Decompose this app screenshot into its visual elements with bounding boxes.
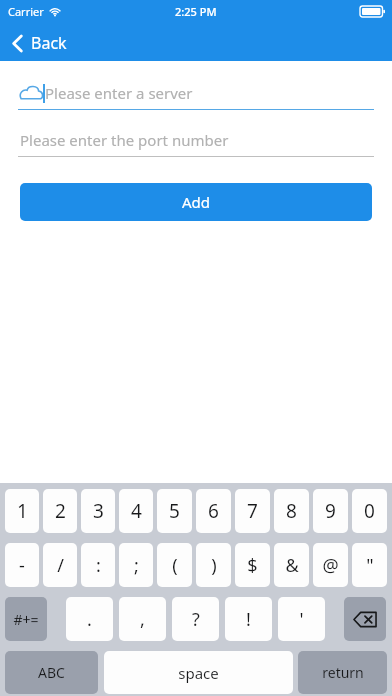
staticText: 1 bbox=[17, 498, 28, 524]
staticText: " bbox=[366, 553, 374, 578]
staticText: & bbox=[285, 553, 299, 578]
staticText: 9 bbox=[325, 498, 336, 524]
button[interactable]: space bbox=[104, 651, 293, 694]
staticText: $ bbox=[247, 553, 258, 578]
button[interactable]: - bbox=[5, 543, 39, 587]
staticText: 7 bbox=[247, 498, 258, 524]
button[interactable]: Backspace bbox=[344, 597, 386, 641]
staticText: ; bbox=[134, 553, 139, 578]
staticText: #+= bbox=[13, 610, 39, 629]
staticText: ) bbox=[211, 553, 217, 578]
button[interactable]: , bbox=[119, 597, 166, 641]
staticText: ABC bbox=[38, 663, 65, 682]
button[interactable]: Back bbox=[8, 29, 71, 57]
button[interactable]: 6 bbox=[196, 489, 231, 533]
staticText: Back bbox=[31, 32, 67, 54]
button[interactable]: ! bbox=[225, 597, 272, 641]
staticText: - bbox=[19, 553, 25, 578]
staticText: 5 bbox=[169, 498, 180, 524]
button[interactable]: & bbox=[274, 543, 309, 587]
button[interactable]: return bbox=[298, 651, 387, 694]
staticText: 3 bbox=[93, 498, 104, 524]
button[interactable]: 7 bbox=[235, 489, 270, 533]
staticText: Carrier bbox=[8, 4, 44, 19]
button[interactable]: 1 bbox=[5, 489, 39, 533]
button[interactable]: 2 bbox=[43, 489, 77, 533]
button[interactable]: ABC bbox=[5, 651, 98, 694]
staticText: space bbox=[178, 663, 219, 683]
button[interactable]: 4 bbox=[119, 489, 153, 533]
button[interactable]: 8 bbox=[274, 489, 309, 533]
staticText: ( bbox=[172, 553, 178, 578]
staticText: : bbox=[96, 553, 101, 578]
staticText: ' bbox=[299, 607, 304, 632]
staticText: 2:25 PM bbox=[175, 4, 217, 19]
button[interactable]: 0 bbox=[352, 489, 387, 533]
staticText: 8 bbox=[286, 498, 297, 524]
staticText: / bbox=[57, 553, 64, 578]
button[interactable]: Please enter a server bbox=[0, 77, 392, 110]
staticText: , bbox=[140, 607, 145, 632]
button[interactable]: Add bbox=[20, 183, 372, 221]
button[interactable]: 5 bbox=[157, 489, 192, 533]
staticText: Please enter a server bbox=[45, 83, 193, 103]
staticText: ? bbox=[192, 607, 200, 632]
button[interactable]: #+= bbox=[5, 597, 47, 641]
button[interactable]: " bbox=[352, 543, 387, 587]
staticText: 0 bbox=[364, 498, 375, 524]
staticText: @ bbox=[322, 553, 339, 578]
staticText: ! bbox=[246, 607, 251, 632]
button[interactable]: ) bbox=[196, 543, 231, 587]
button[interactable]: Please enter the port number bbox=[0, 124, 392, 157]
staticText: 6 bbox=[208, 498, 219, 524]
staticText: 4 bbox=[131, 498, 142, 524]
button[interactable]: @ bbox=[313, 543, 348, 587]
button[interactable]: 3 bbox=[81, 489, 115, 533]
staticText: . bbox=[87, 607, 92, 632]
button[interactable]: ? bbox=[172, 597, 219, 641]
button[interactable]: . bbox=[66, 597, 113, 641]
button[interactable]: 9 bbox=[313, 489, 348, 533]
button[interactable]: ' bbox=[278, 597, 325, 641]
staticText: 2 bbox=[55, 498, 66, 524]
button[interactable]: : bbox=[81, 543, 115, 587]
staticText: Add bbox=[182, 192, 211, 212]
button[interactable]: ( bbox=[157, 543, 192, 587]
staticText: Please enter the port number bbox=[20, 130, 229, 150]
button[interactable]: ; bbox=[119, 543, 153, 587]
staticText: return bbox=[322, 663, 364, 682]
button[interactable]: $ bbox=[235, 543, 270, 587]
button[interactable]: / bbox=[43, 543, 77, 587]
